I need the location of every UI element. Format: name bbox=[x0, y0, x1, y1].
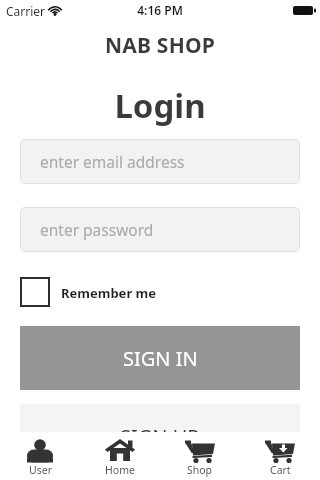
button[interactable] bbox=[20, 277, 50, 307]
staticText: enter password bbox=[40, 219, 154, 240]
staticText: Cart bbox=[270, 463, 291, 477]
staticText: Login bbox=[0, 83, 320, 128]
button[interactable]: Shop bbox=[160, 432, 240, 480]
staticText: Remember me bbox=[61, 284, 157, 302]
staticText: NAB SHOP bbox=[0, 31, 320, 60]
staticText: User bbox=[29, 463, 52, 477]
button[interactable]: Cart bbox=[240, 432, 320, 480]
button[interactable]: enter password bbox=[20, 207, 300, 252]
staticText: 4:16 PM bbox=[0, 2, 320, 18]
button[interactable]: User bbox=[0, 432, 80, 480]
staticText: Carrier bbox=[6, 3, 46, 19]
button[interactable]: SIGN UP bbox=[20, 404, 300, 468]
staticText: Home bbox=[105, 463, 135, 477]
staticText: enter email address bbox=[40, 151, 185, 172]
button[interactable]: enter email address bbox=[20, 139, 300, 184]
staticText: SIGN UP bbox=[120, 423, 200, 450]
staticText: SIGN IN bbox=[123, 345, 198, 372]
button[interactable]: SIGN IN bbox=[20, 326, 300, 390]
button[interactable]: Home bbox=[80, 432, 160, 480]
staticText: Shop bbox=[187, 463, 213, 477]
